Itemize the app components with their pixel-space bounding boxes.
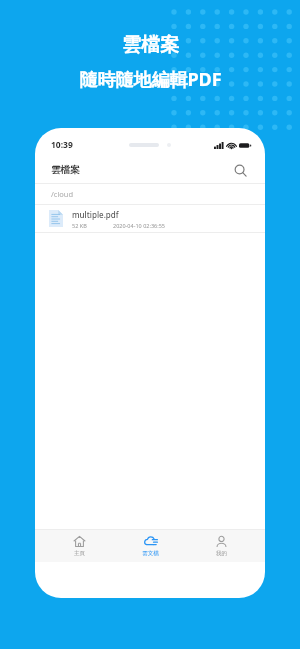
staticText: multiple.pdf	[72, 209, 119, 220]
staticText: 雲檔案	[51, 164, 80, 176]
staticText: 52 KB	[72, 222, 87, 229]
button[interactable]: 我的	[194, 533, 248, 559]
staticText: /cloud	[51, 189, 74, 199]
staticText: 隨時隨地編輯PDF	[79, 67, 222, 92]
staticText: 2020-04-10 02:36:55	[113, 222, 165, 229]
button[interactable]: 雲文檔	[123, 533, 177, 559]
button[interactable]: /cloud	[35, 184, 265, 204]
staticText: 我的	[216, 550, 227, 557]
staticText: 主頁	[74, 550, 85, 557]
button[interactable]: 主頁	[52, 533, 106, 559]
button[interactable]: multiple.pdf	[35, 205, 265, 232]
staticText: 雲文檔	[142, 550, 159, 557]
staticText: 雲檔案	[122, 33, 179, 57]
staticText: 10:39	[51, 139, 73, 151]
button[interactable]: Search	[231, 161, 249, 179]
